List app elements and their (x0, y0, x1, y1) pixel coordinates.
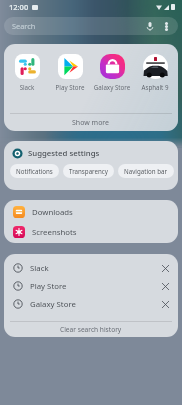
staticText: Slack (7, 83, 47, 91)
staticText: Downloads (32, 207, 73, 218)
button[interactable]: Show more (4, 114, 178, 131)
button[interactable]: Slack (7, 54, 47, 91)
button[interactable]: Remove Play Store (158, 279, 172, 293)
button[interactable]: Transparency (63, 164, 114, 178)
button[interactable]: Play Store (4, 277, 178, 295)
staticText: Clear search history (60, 325, 122, 334)
staticText: Slack (30, 263, 49, 274)
staticText: Transparency (69, 167, 108, 175)
staticText: Screenshots (32, 227, 77, 238)
staticText: 12:00 (9, 2, 29, 12)
button[interactable]: Slack (4, 259, 178, 277)
button[interactable]: Search (4, 17, 178, 35)
button[interactable]: Remove Galaxy Store (158, 297, 172, 311)
staticText: Show more (72, 118, 110, 128)
staticText: Play Store (50, 83, 90, 91)
staticText: Play Store (30, 281, 67, 292)
staticText: Navigation bar (124, 167, 168, 175)
button[interactable]: Screenshots (4, 222, 178, 242)
staticText: Suggested settings (28, 148, 100, 159)
button[interactable]: Galaxy Store (92, 54, 132, 91)
button[interactable]: Play Store (50, 54, 90, 91)
button[interactable]: Voice search (142, 18, 158, 34)
button[interactable]: Asphalt 9 (135, 54, 175, 91)
button[interactable]: Clear search history (4, 322, 178, 337)
button[interactable]: Notifications (10, 164, 59, 178)
button[interactable]: Remove Slack (158, 261, 172, 275)
button[interactable]: More options (158, 18, 174, 34)
staticText: Search (12, 21, 36, 31)
button[interactable]: Navigation bar (118, 164, 174, 178)
staticText: Asphalt 9 (135, 83, 175, 91)
button[interactable]: Galaxy Store (4, 295, 178, 313)
staticText: Galaxy Store (92, 83, 132, 91)
staticText: Notifications (16, 167, 53, 175)
button[interactable]: Downloads (4, 202, 178, 222)
staticText: Galaxy Store (30, 299, 76, 310)
